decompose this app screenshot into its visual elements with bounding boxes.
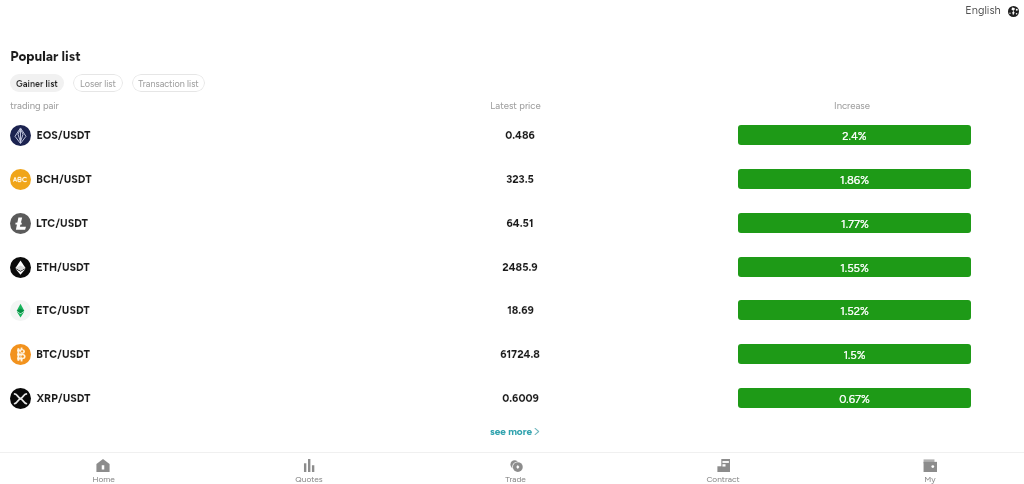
- staticText: 323.5: [506, 173, 534, 186]
- staticText: My: [924, 474, 936, 484]
- staticText: 1.52%: [840, 304, 869, 317]
- staticText: BTC/USDT: [36, 348, 90, 361]
- staticText: 1.86%: [840, 173, 869, 186]
- staticText: 0.486: [505, 129, 535, 142]
- staticText: 2485.9: [502, 261, 538, 274]
- staticText: 0.6009: [502, 392, 539, 405]
- button[interactable]: see more: [488, 423, 542, 439]
- staticText: trading pair: [10, 100, 59, 111]
- staticText: Trade: [505, 474, 526, 484]
- button[interactable]: Quotes: [206, 453, 412, 484]
- button[interactable]: Home: [0, 453, 206, 484]
- staticText: see more: [490, 425, 532, 437]
- staticText: Quotes: [295, 474, 323, 484]
- staticText: Latest price: [490, 100, 541, 111]
- staticText: 1.77%: [841, 217, 869, 230]
- staticText: 2.4%: [842, 129, 867, 142]
- staticText: 18.69: [507, 304, 534, 317]
- button[interactable]: Loser list: [73, 74, 123, 92]
- button[interactable]: My: [826, 453, 1024, 484]
- staticText: 61724.8: [500, 348, 540, 361]
- staticText: 1.5%: [843, 348, 866, 361]
- staticText: Popular list: [10, 48, 81, 64]
- button[interactable]: XRP/USDT: [0, 376, 1024, 420]
- staticText: Contract: [706, 474, 740, 484]
- button[interactable]: EOS/USDT: [0, 113, 1024, 157]
- button[interactable]: Transaction list: [132, 74, 205, 92]
- staticText: 0.67%: [839, 392, 870, 405]
- staticText: English: [965, 4, 1001, 17]
- staticText: Gainer list: [16, 78, 58, 89]
- staticText: BCH/USDT: [36, 173, 92, 186]
- staticText: Home: [92, 474, 115, 484]
- button[interactable]: Trade: [412, 453, 619, 484]
- button[interactable]: Gainer list: [10, 74, 64, 92]
- staticText: Loser list: [80, 78, 116, 89]
- button[interactable]: ETH/USDT: [0, 245, 1024, 289]
- button[interactable]: Contract: [619, 453, 826, 484]
- staticText: 64.51: [506, 217, 534, 230]
- staticText: ETC/USDT: [36, 304, 90, 317]
- staticText: 1.55%: [840, 261, 869, 274]
- staticText: Transaction list: [138, 78, 199, 89]
- button[interactable]: LTC/USDT: [0, 201, 1024, 245]
- staticText: ETH/USDT: [36, 261, 90, 274]
- staticText: XRP/USDT: [36, 392, 91, 405]
- button[interactable]: Change language: [963, 3, 1021, 18]
- staticText: Increase: [834, 100, 870, 111]
- staticText: EOS/USDT: [36, 129, 91, 142]
- button[interactable]: ETC/USDT: [0, 288, 1024, 332]
- button[interactable]: BTC/USDT: [0, 332, 1024, 376]
- button[interactable]: BCH/USDT: [0, 157, 1024, 201]
- staticText: LTC/USDT: [36, 217, 88, 230]
